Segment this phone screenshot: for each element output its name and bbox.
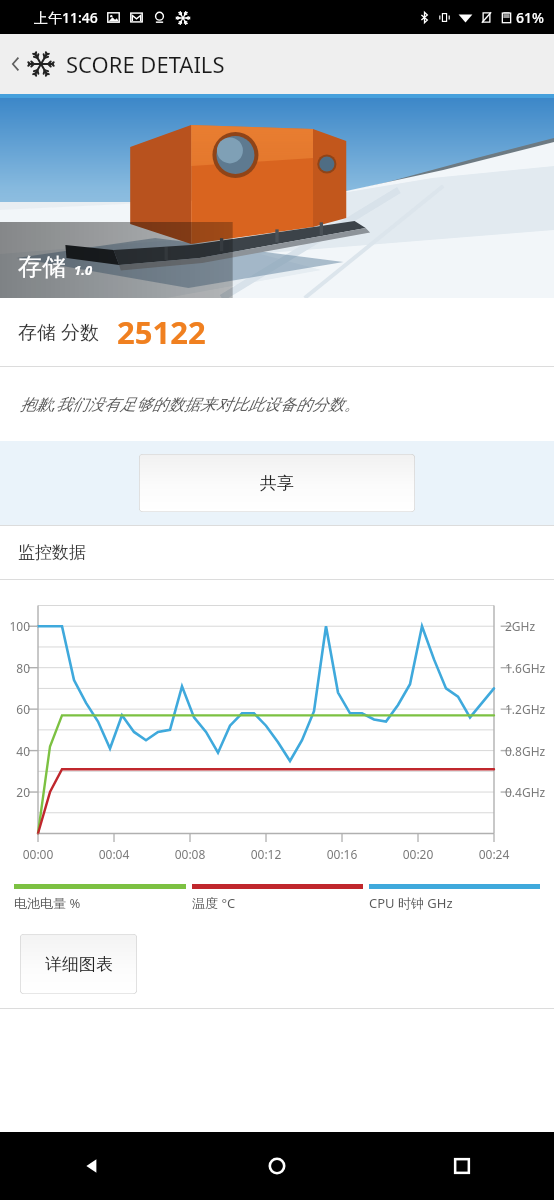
staticText: 温度 °C xyxy=(192,894,236,912)
staticText: 20 xyxy=(0,784,30,800)
staticText: 61% xyxy=(516,8,544,27)
staticText: 详细图表 xyxy=(45,954,113,975)
button[interactable]: 详细图表 xyxy=(20,934,137,994)
button[interactable]: Home xyxy=(184,1132,369,1200)
staticText: 100 xyxy=(0,618,30,634)
staticText: 00:08 xyxy=(168,846,212,862)
staticText: 00:04 xyxy=(92,846,136,862)
staticText: 40 xyxy=(0,743,30,759)
staticText: 监控数据 xyxy=(18,542,86,563)
staticText: 电池电量 % xyxy=(14,894,81,912)
staticText: CPU 时钟 GHz xyxy=(369,894,453,912)
staticText: 共享 xyxy=(260,473,294,494)
staticText: 0.4GHz xyxy=(505,784,546,800)
staticText: 00:24 xyxy=(472,846,516,862)
staticText: 存储 xyxy=(18,252,66,282)
button[interactable]: Back xyxy=(0,34,554,94)
staticText: 00:16 xyxy=(320,846,364,862)
staticText: 2GHz xyxy=(505,618,536,634)
button[interactable]: Recent apps xyxy=(369,1132,554,1200)
staticText: 00:00 xyxy=(16,846,60,862)
button[interactable]: 共享 xyxy=(139,454,415,512)
staticText: 00:12 xyxy=(244,846,288,862)
staticText: 1.6GHz xyxy=(505,660,546,676)
staticText: 抱歉,我们没有足够的数据来对比此设备的分数。 xyxy=(20,393,361,415)
staticText: 1.0 xyxy=(74,261,93,279)
staticText: 80 xyxy=(0,660,30,676)
staticText: 00:20 xyxy=(396,846,440,862)
staticText: 1.2GHz xyxy=(505,701,546,717)
other: Back xyxy=(6,54,26,74)
staticText: 0.8GHz xyxy=(505,743,546,759)
staticText: SCORE DETAILS xyxy=(66,49,225,79)
staticText: 60 xyxy=(0,701,30,717)
staticText: 存储 分数 xyxy=(18,319,99,345)
staticText: 25122 xyxy=(117,311,206,353)
staticText: 上午11:46 xyxy=(34,8,98,27)
button[interactable]: Back xyxy=(0,1132,184,1200)
